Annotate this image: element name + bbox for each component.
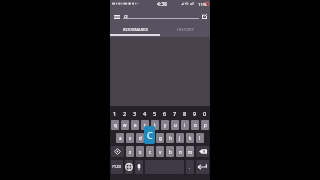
- button[interactable]: a: [116, 133, 124, 143]
- button[interactable]: d: [136, 133, 144, 143]
- button[interactable]: c: [146, 146, 154, 157]
- staticText: 3: [133, 110, 137, 117]
- button[interactable]: j: [176, 133, 184, 143]
- staticText: 4:38: [157, 1, 167, 8]
- button[interactable]: r: [141, 120, 149, 130]
- button[interactable]: f: [146, 133, 154, 143]
- button[interactable]: t: [151, 120, 159, 130]
- button[interactable]: BOOKMARKS: [110, 24, 160, 37]
- button[interactable]: o: [191, 120, 199, 130]
- staticText: b: [169, 149, 172, 155]
- button[interactable]: m: [186, 146, 194, 157]
- button[interactable]: ?123: [111, 160, 123, 174]
- staticText: BOOKMARKS: [123, 27, 148, 32]
- button[interactable]: 6: [160, 108, 170, 119]
- button[interactable]: 9: [190, 108, 200, 119]
- staticText: k: [189, 135, 192, 141]
- button[interactable]: Backspace: [196, 146, 209, 157]
- staticText: p: [204, 122, 207, 128]
- staticText: a: [119, 135, 122, 141]
- button[interactable]: 1: [110, 108, 120, 119]
- button[interactable]: k: [186, 133, 194, 143]
- button[interactable]: v: [156, 146, 164, 157]
- button[interactable]: Enter: [196, 160, 209, 174]
- staticText: 11%: [198, 2, 207, 8]
- staticText: v: [159, 149, 162, 155]
- staticText: C: [147, 129, 153, 141]
- button[interactable]: u: [171, 120, 179, 130]
- staticText: y: [164, 122, 167, 128]
- staticText: q: [124, 12, 128, 20]
- staticText: x: [139, 149, 142, 155]
- staticText: r: [144, 122, 146, 128]
- staticText: 6: [163, 110, 167, 117]
- staticText: d: [139, 135, 142, 141]
- staticText: HISTORY: [177, 27, 194, 32]
- button[interactable]: 3: [130, 108, 140, 119]
- button[interactable]: w: [121, 120, 129, 130]
- staticText: l: [199, 135, 201, 141]
- button[interactable]: e: [131, 120, 139, 130]
- button[interactable]: n: [176, 146, 184, 157]
- button[interactable]: p: [201, 120, 209, 130]
- staticText: u: [174, 122, 177, 128]
- staticText: c: [149, 149, 152, 155]
- staticText: 7: [173, 110, 177, 117]
- button[interactable]: 2: [120, 108, 130, 119]
- staticText: 1: [113, 110, 117, 117]
- staticText: m: [188, 149, 193, 155]
- staticText: 0: [203, 110, 207, 117]
- staticText: t: [154, 122, 156, 128]
- staticText: n: [179, 149, 182, 155]
- button[interactable]: y: [161, 120, 169, 130]
- button[interactable]: Shift: [111, 146, 124, 157]
- button[interactable]: l: [196, 133, 204, 143]
- staticText: 9: [193, 110, 197, 117]
- button[interactable]: 7: [170, 108, 180, 119]
- staticText: e: [134, 122, 137, 128]
- button[interactable]: z: [126, 146, 134, 157]
- staticText: i: [184, 122, 186, 128]
- button[interactable]: x: [136, 146, 144, 157]
- button[interactable]: g: [156, 133, 164, 143]
- staticText: 2: [123, 110, 127, 117]
- staticText: .: [189, 165, 191, 170]
- staticText: j: [179, 135, 181, 141]
- staticText: ?123: [112, 164, 122, 170]
- staticText: 8: [183, 110, 187, 117]
- staticText: o: [194, 122, 197, 128]
- staticText: z: [129, 149, 132, 155]
- button[interactable]: 0: [200, 108, 210, 119]
- button[interactable]: Voice input: [135, 160, 143, 174]
- staticText: g: [159, 135, 162, 141]
- button[interactable]: q: [123, 9, 199, 24]
- button[interactable]: Navigation menu: [111, 11, 123, 23]
- staticText: s: [129, 135, 132, 141]
- button[interactable]: 5: [150, 108, 160, 119]
- button[interactable]: q: [111, 120, 119, 130]
- button[interactable]: HISTORY: [160, 24, 210, 37]
- button[interactable]: h: [166, 133, 174, 143]
- button[interactable]: .: [186, 160, 194, 174]
- staticText: 4: [143, 110, 147, 117]
- button[interactable]: i: [181, 120, 189, 130]
- staticText: q: [114, 122, 117, 128]
- staticText: h: [169, 135, 172, 141]
- button[interactable]: 4: [140, 108, 150, 119]
- button[interactable]: Change language: [125, 160, 133, 174]
- button[interactable]: s: [126, 133, 134, 143]
- staticText: w: [123, 122, 127, 128]
- staticText: 5: [153, 110, 157, 117]
- button[interactable]: b: [166, 146, 174, 157]
- button[interactable]: Reload: [198, 10, 210, 22]
- button[interactable]: 8: [180, 108, 190, 119]
- staticText: f: [149, 135, 151, 141]
